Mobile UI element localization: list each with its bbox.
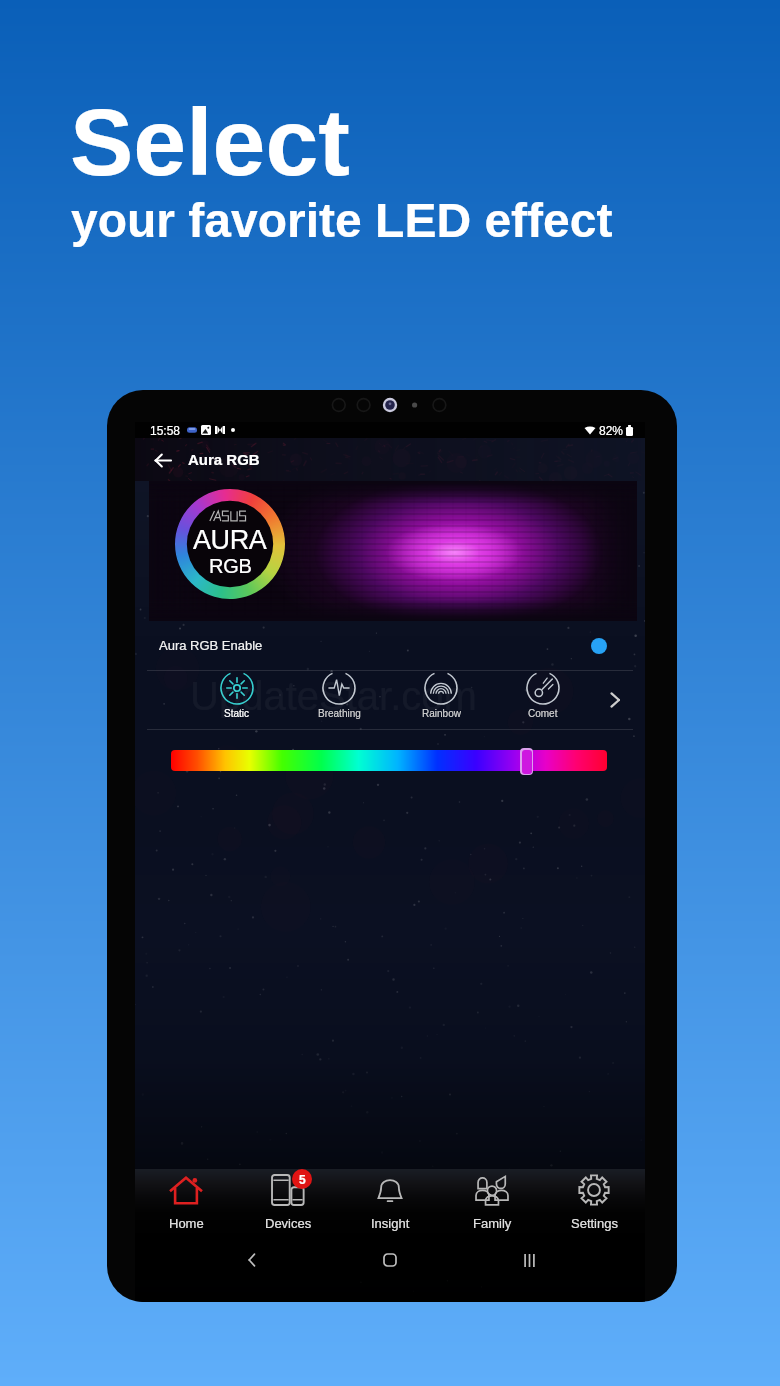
staticText: 15:58: [150, 424, 181, 437]
staticText: Select: [70, 89, 350, 195]
button[interactable]: [171, 750, 607, 771]
staticText: Insight: [371, 1216, 410, 1231]
button[interactable]: Family: [441, 1169, 543, 1240]
button[interactable]: Back: [230, 1240, 274, 1280]
staticText: UpdateStar.com: [190, 674, 477, 719]
button[interactable]: Static: [189, 671, 285, 727]
button[interactable]: Breathing: [291, 671, 387, 727]
button[interactable]: Insight: [339, 1169, 441, 1240]
staticText: Breathing: [318, 708, 361, 719]
staticText: Settings: [571, 1216, 618, 1231]
staticText: Aura RGB Enable: [159, 638, 263, 653]
button[interactable]: Home: [135, 1169, 237, 1240]
button[interactable]: More effects: [597, 670, 633, 730]
staticText: Aura RGB: [188, 451, 260, 468]
staticText: 5: [299, 1173, 306, 1186]
button[interactable]: Recent apps: [507, 1240, 551, 1280]
button[interactable]: 5: [237, 1169, 339, 1240]
staticText: Static: [224, 708, 250, 719]
staticText: Devices: [265, 1216, 312, 1231]
button[interactable]: Settings: [543, 1169, 645, 1240]
button[interactable]: Home: [368, 1240, 412, 1280]
staticText: Comet: [528, 708, 558, 719]
button[interactable]: Rainbow: [393, 671, 489, 727]
button[interactable]: Aura RGB Enable: [135, 621, 645, 670]
button[interactable]: Back: [146, 444, 178, 476]
staticText: Family: [473, 1216, 512, 1231]
staticText: AURA: [193, 525, 267, 555]
staticText: your favorite LED effect: [71, 194, 613, 248]
staticText: Rainbow: [422, 708, 461, 719]
staticText: 82%: [599, 424, 624, 437]
staticText: Home: [169, 1216, 204, 1231]
button[interactable]: Comet: [495, 671, 591, 727]
staticText: RGB: [209, 555, 252, 577]
